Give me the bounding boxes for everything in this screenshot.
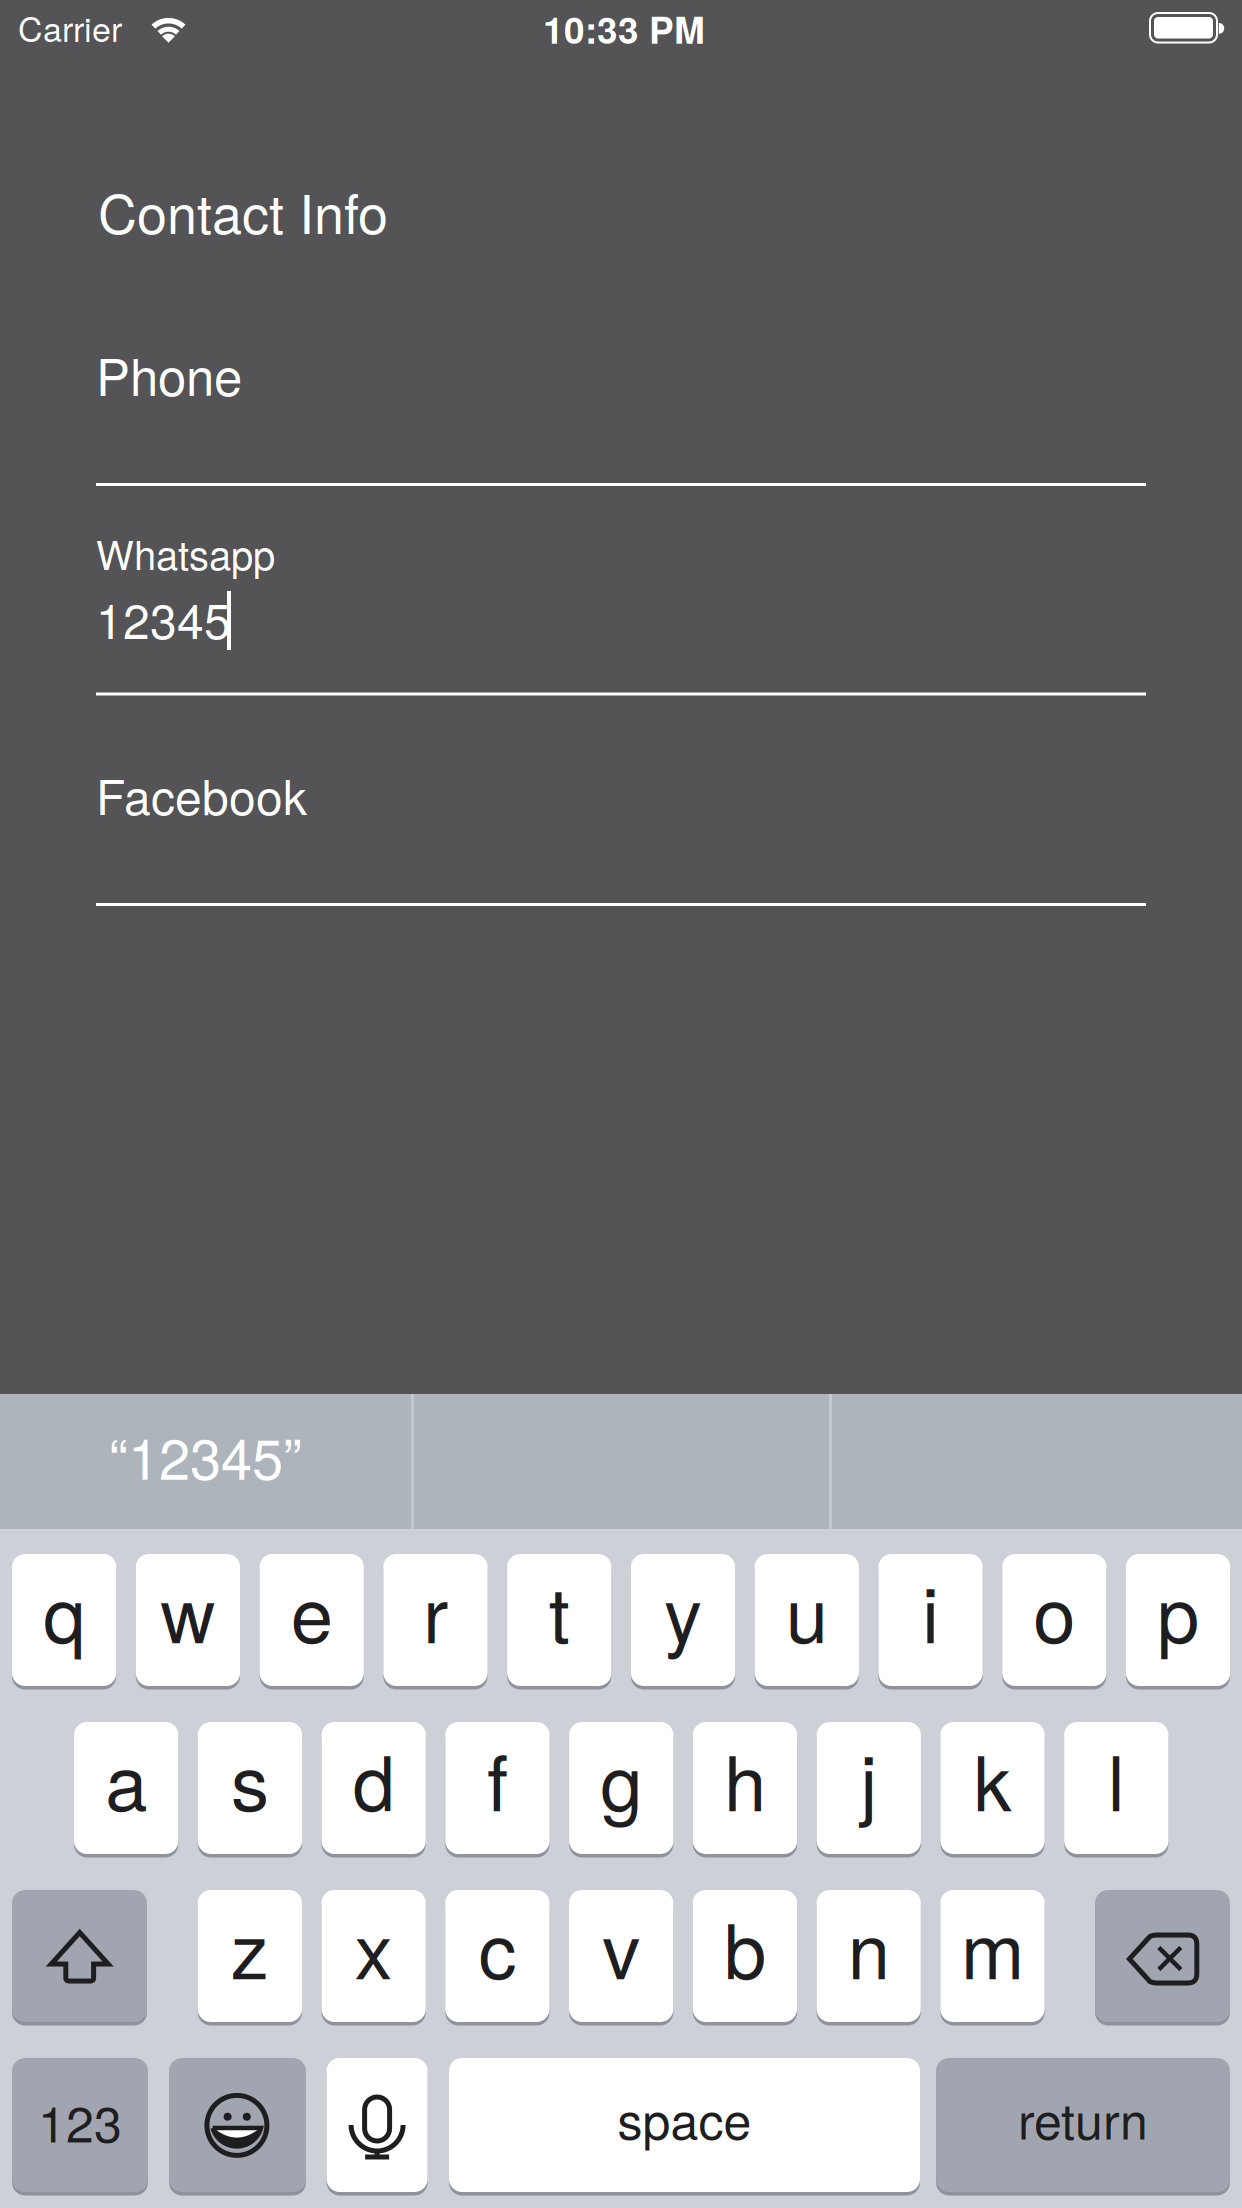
button[interactable]: Delete xyxy=(1095,1890,1230,2022)
staticText: h xyxy=(724,1724,766,1833)
button[interactable]: k xyxy=(940,1722,1045,1854)
staticText: 12345 xyxy=(96,584,231,652)
button[interactable]: q xyxy=(12,1554,116,1686)
button[interactable]: Facebook xyxy=(96,756,1146,906)
button[interactable]: i xyxy=(878,1554,983,1686)
button[interactable]: y xyxy=(631,1554,735,1686)
button[interactable]: s xyxy=(198,1722,302,1854)
button[interactable]: return xyxy=(936,2058,1230,2192)
staticText: i xyxy=(922,1556,939,1665)
staticText: space xyxy=(617,2082,751,2154)
button[interactable]: z xyxy=(198,1890,302,2022)
staticText: Carrier xyxy=(18,3,122,52)
staticText: y xyxy=(664,1556,702,1665)
staticText: f xyxy=(487,1724,508,1833)
button[interactable]: j xyxy=(817,1722,921,1854)
staticText: r xyxy=(423,1556,448,1665)
button[interactable]: e xyxy=(259,1554,364,1686)
button[interactable]: p xyxy=(1126,1554,1230,1686)
button[interactable]: l xyxy=(1064,1722,1168,1854)
staticText: p xyxy=(1157,1556,1199,1665)
staticText: j xyxy=(860,1724,877,1833)
staticText: d xyxy=(353,1724,395,1833)
staticText: c xyxy=(478,1892,516,2001)
staticText: m xyxy=(961,1892,1024,2001)
staticText: t xyxy=(549,1556,570,1665)
button[interactable]: v xyxy=(569,1890,673,2022)
staticText: return xyxy=(1018,2082,1148,2154)
staticText: s xyxy=(231,1724,269,1833)
button[interactable]: n xyxy=(816,1890,921,2022)
staticText: q xyxy=(43,1556,85,1665)
button[interactable]: Whatsapp xyxy=(96,520,1146,696)
button[interactable]: a xyxy=(74,1722,178,1854)
button[interactable]: c xyxy=(445,1890,549,2022)
staticText: Whatsapp xyxy=(96,524,275,581)
button[interactable]: Phone xyxy=(96,336,1146,486)
staticText: x xyxy=(355,1892,393,2001)
staticText: 10:33 PM xyxy=(543,2,705,55)
staticText: Facebook xyxy=(96,760,307,828)
button[interactable]: t xyxy=(507,1554,611,1686)
staticText: b xyxy=(724,1892,766,2001)
button[interactable]: “12345” xyxy=(0,1394,411,1529)
staticText: u xyxy=(786,1556,828,1665)
button[interactable]: o xyxy=(1002,1554,1106,1686)
button[interactable]: space xyxy=(449,2058,920,2192)
staticText: Contact Info xyxy=(98,172,388,249)
button[interactable]: f xyxy=(445,1722,550,1854)
button[interactable]: r xyxy=(383,1554,488,1686)
staticText: e xyxy=(291,1556,333,1665)
staticText: l xyxy=(1108,1724,1125,1833)
staticText: v xyxy=(602,1892,640,2001)
staticText: w xyxy=(160,1556,215,1665)
staticText: 123 xyxy=(38,2085,122,2157)
button[interactable]: m xyxy=(940,1890,1045,2022)
button[interactable]: u xyxy=(755,1554,859,1686)
button[interactable]: b xyxy=(693,1890,797,2022)
button[interactable]: Shift xyxy=(12,1890,147,2022)
staticText: g xyxy=(600,1724,642,1833)
staticText: k xyxy=(973,1724,1011,1833)
staticText: “12345” xyxy=(109,1415,302,1496)
button[interactable]: h xyxy=(693,1722,797,1854)
staticText: o xyxy=(1033,1556,1075,1665)
button[interactable]: Dictate xyxy=(327,2058,428,2192)
button[interactable]: Emoji xyxy=(169,2058,306,2192)
staticText: n xyxy=(848,1892,890,2001)
button[interactable]: g xyxy=(569,1722,673,1854)
button[interactable]: w xyxy=(136,1554,240,1686)
staticText: a xyxy=(105,1724,147,1833)
button[interactable]: d xyxy=(321,1722,426,1854)
button[interactable]: 123 xyxy=(12,2058,148,2192)
button[interactable]: x xyxy=(321,1890,426,2022)
staticText: Phone xyxy=(96,337,242,410)
staticText: z xyxy=(231,1892,269,2001)
